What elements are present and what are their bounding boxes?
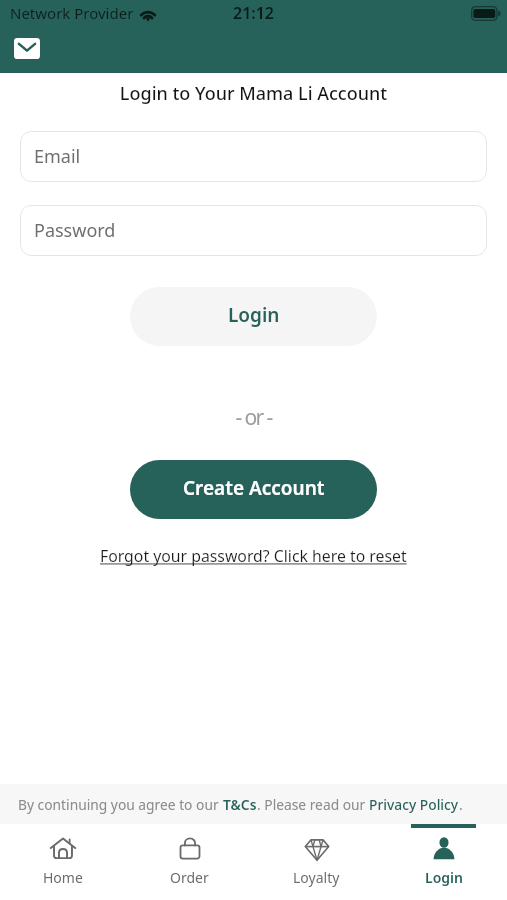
staticText: By continuing you agree to our	[18, 795, 223, 814]
staticText: Login	[228, 302, 280, 328]
staticText: Login	[425, 868, 463, 887]
button[interactable]: Login	[130, 287, 377, 346]
staticText: - or -	[0, 403, 507, 432]
staticText: Network Provider	[10, 3, 134, 23]
button[interactable]: T&Cs	[223, 795, 257, 814]
staticText: Forgot your password? Click here to rese…	[100, 545, 407, 567]
button[interactable]: Privacy Policy	[369, 795, 459, 814]
button[interactable]: Home	[0, 824, 126, 900]
staticText: .	[459, 795, 463, 814]
staticText: Loyalty	[293, 868, 340, 887]
staticText: T&Cs	[223, 795, 257, 814]
button[interactable]: Order	[126, 824, 253, 900]
staticText: Create Account	[183, 475, 325, 501]
button[interactable]: Messages	[14, 38, 40, 59]
staticText: 21:12	[233, 2, 275, 24]
button[interactable]: Loyalty	[253, 824, 380, 900]
staticText: Home	[43, 868, 83, 887]
button[interactable]: Login	[380, 824, 507, 900]
staticText: Email	[34, 144, 81, 169]
staticText: Login to Your Mama Li Account	[0, 81, 507, 106]
staticText: Order	[170, 868, 209, 887]
button[interactable]: Password	[20, 205, 487, 256]
button[interactable]: Forgot your password? Click here to rese…	[100, 545, 407, 567]
staticText: Privacy Policy	[369, 795, 459, 814]
staticText: Password	[34, 218, 116, 243]
button[interactable]: Create Account	[130, 460, 377, 519]
button[interactable]: Email	[20, 131, 487, 182]
staticText: . Please read our	[257, 795, 369, 814]
